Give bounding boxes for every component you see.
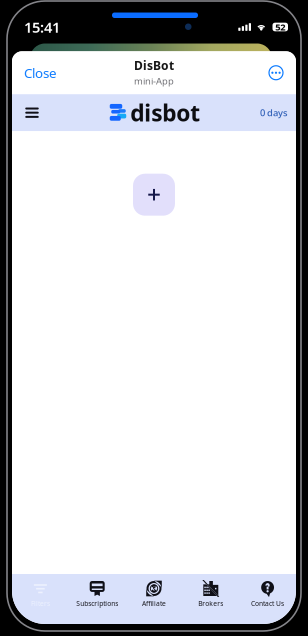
staticText: Close [24,64,57,82]
button[interactable]: Add [133,174,175,216]
staticText: Brokers [198,599,223,608]
button[interactable]: Brokers [182,574,239,624]
staticText: 52 [275,21,285,33]
staticText: Filters [31,599,50,608]
staticText: DisBot [134,57,174,73]
staticText: Affiliate [142,599,166,608]
button[interactable]: Contact Us [239,574,296,624]
staticText: mini-App [134,75,174,87]
staticText: disbot [130,98,200,128]
button[interactable]: Subscriptions [69,574,126,624]
staticText: 0 days [260,106,288,119]
button[interactable]: Filters [12,574,69,624]
staticText: Subscriptions [76,599,118,608]
button[interactable]: Menu [18,99,46,127]
button[interactable]: Close [21,59,60,87]
staticText: 15:41 [24,17,60,37]
staticText: Contact Us [251,599,284,608]
button[interactable]: More options [264,61,288,85]
button[interactable]: Affiliate [126,574,182,624]
